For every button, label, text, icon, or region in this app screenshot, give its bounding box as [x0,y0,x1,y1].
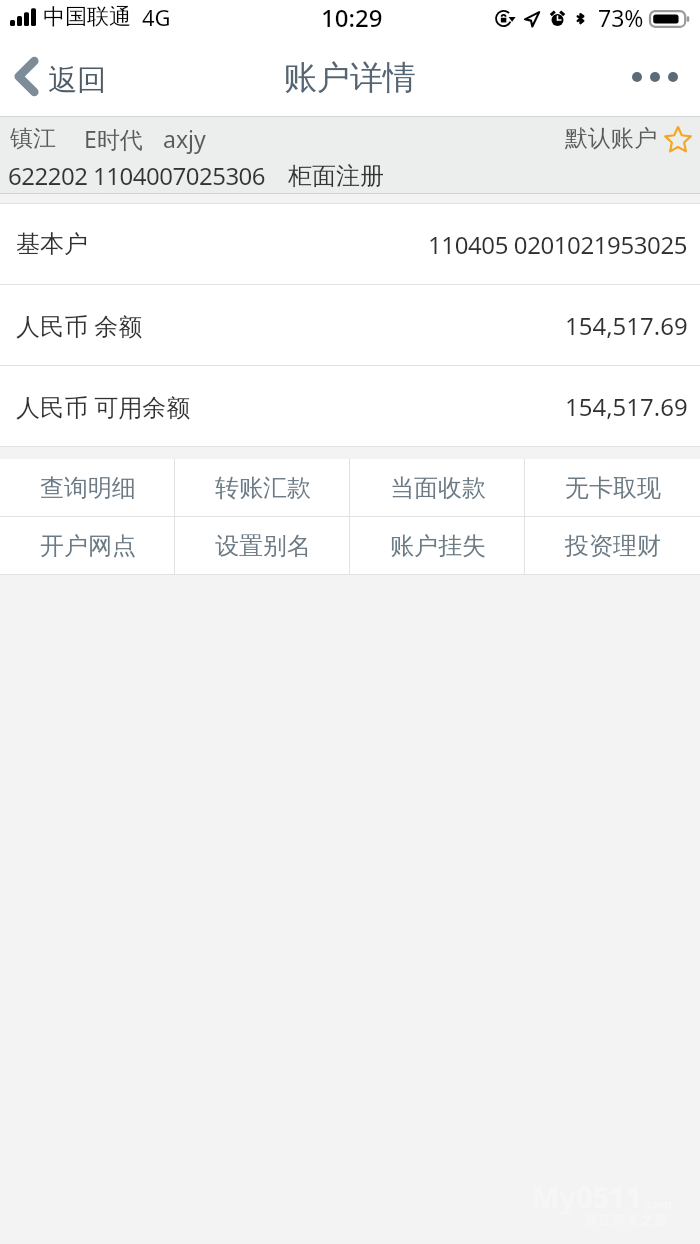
staticText: 转账汇款 [215,473,311,503]
staticText: 人民币 余额 [16,309,143,342]
staticText: 默认账户 [565,124,657,153]
button[interactable]: 设置别名 [175,517,350,574]
button[interactable]: 无卡取现 [525,459,700,516]
staticText: 110405 0201021953025 [428,228,688,261]
staticText: 当面收款 [390,473,486,503]
staticText: 返回 [48,62,106,99]
staticText: 基本户 [16,229,88,259]
staticText: 镇江 [10,124,56,153]
staticText: 开户网点 [40,531,136,561]
staticText: 投资理财 [565,531,661,561]
staticText: 622202 1104007025306 [8,159,266,192]
staticText: 设置别名 [215,531,311,561]
button[interactable]: 返回 [0,36,120,117]
button[interactable]: 当面收款 [350,459,525,516]
staticText: 柜面注册 [288,161,384,191]
staticText: 账户挂失 [390,531,486,561]
staticText: 154,517.69 [565,390,688,423]
staticText: axjy [163,123,206,154]
staticText: 人民币 可用余额 [16,390,191,423]
button[interactable]: 账户挂失 [350,517,525,574]
button[interactable]: 人民币 余额 [0,285,700,365]
staticText: 4G [142,2,171,32]
staticText: 账户详情 [284,57,416,99]
button[interactable]: 基本户 [0,204,700,284]
button[interactable]: More options [612,36,700,117]
staticText: 73% [598,2,644,33]
staticText: 154,517.69 [565,309,688,342]
staticText: 无卡取现 [565,473,661,503]
staticText: 10:29 [321,1,383,34]
button[interactable]: 人民币 可用余额 [0,366,700,446]
button[interactable]: 投资理财 [525,517,700,574]
staticText: 查询明细 [40,473,136,503]
button[interactable]: 开户网点 [0,517,175,574]
button[interactable]: 转账汇款 [175,459,350,516]
staticText: 中国联通 [43,3,131,31]
button[interactable]: 查询明细 [0,459,175,516]
staticText: E时代 [84,123,143,154]
